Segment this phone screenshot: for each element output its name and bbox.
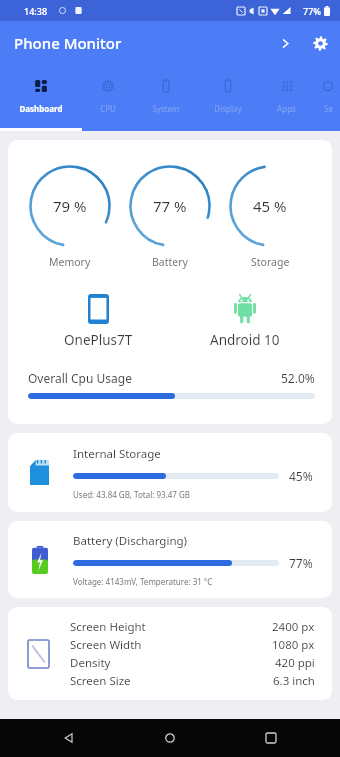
staticText: Density (70, 655, 111, 671)
staticText: Screen Height (70, 619, 146, 635)
staticText: Voltage: 4143mV, Temperature: 31 °C (73, 576, 213, 587)
button[interactable]: System (134, 65, 198, 131)
staticText: 45% (289, 468, 313, 484)
staticText: 52.0% (281, 370, 315, 386)
button[interactable]: Expand (269, 27, 301, 59)
staticText: 1080 px (272, 637, 315, 653)
staticText: Internal Storage (73, 446, 161, 462)
button[interactable]: Recent apps (254, 721, 288, 755)
staticText: 77% (289, 555, 313, 571)
staticText: 77% (303, 5, 321, 17)
staticText: Dashboard (19, 103, 63, 114)
button[interactable]: Dashboard (0, 65, 82, 131)
button[interactable]: Battery (Discharging) (8, 521, 332, 598)
staticText: 6.3 inch (273, 673, 315, 689)
staticText: CPU (100, 103, 116, 114)
button[interactable]: Display (198, 65, 258, 131)
staticText: Battery (152, 255, 188, 269)
button[interactable]: Apps (258, 65, 315, 131)
staticText: OnePlus7T (64, 331, 133, 349)
button[interactable]: Home (153, 721, 187, 755)
staticText: Screen Size (70, 673, 131, 689)
button[interactable]: Settings (304, 27, 336, 59)
staticText: 77 % (153, 196, 187, 216)
button[interactable]: Se (315, 65, 340, 131)
staticText: 45 % (253, 196, 287, 216)
staticText: 14:38 (24, 5, 48, 17)
staticText: Screen Width (70, 637, 142, 653)
button[interactable]: Internal Storage (8, 433, 332, 512)
staticText: Se (324, 103, 333, 114)
staticText: Android 10 (210, 331, 280, 349)
staticText: 2400 px (272, 619, 315, 635)
staticText: Overall Cpu Usage (28, 370, 132, 386)
button[interactable]: CPU (82, 65, 134, 131)
staticText: Apps (277, 103, 296, 114)
button[interactable]: Back (52, 721, 86, 755)
button[interactable]: Screen Height (8, 607, 332, 700)
staticText: Battery (Discharging) (73, 533, 188, 549)
staticText: 420 ppi (275, 655, 315, 671)
staticText: Phone Monitor (14, 33, 122, 53)
staticText: Memory (49, 255, 91, 269)
staticText: System (152, 103, 180, 114)
staticText: Display (214, 103, 242, 114)
staticText: 79 % (53, 196, 87, 216)
staticText: Storage (251, 255, 290, 269)
staticText: Used: 43.84 GB, Total: 93.47 GB (73, 489, 190, 500)
